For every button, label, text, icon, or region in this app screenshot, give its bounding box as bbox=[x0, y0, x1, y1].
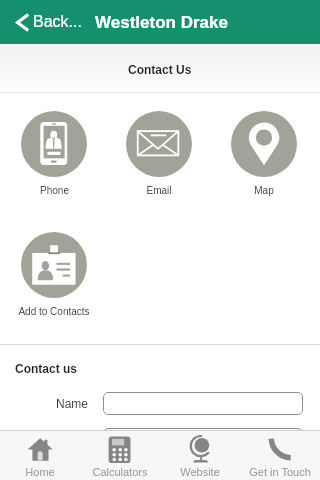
staticText: Contact us bbox=[15, 362, 78, 375]
button[interactable] bbox=[103, 392, 303, 415]
staticText: Home bbox=[25, 466, 55, 478]
button[interactable]: Home bbox=[0, 431, 80, 480]
staticText: Contact Us bbox=[128, 63, 192, 76]
staticText: Map bbox=[254, 185, 274, 196]
staticText: Back... bbox=[33, 13, 82, 31]
button[interactable]: Add to Contacts bbox=[2, 232, 106, 317]
staticText: Get in Touch bbox=[249, 466, 311, 478]
button[interactable]: Phone bbox=[2, 111, 106, 196]
button[interactable]: Email bbox=[106, 111, 211, 196]
button[interactable]: Back... bbox=[0, 0, 92, 44]
button[interactable]: Map bbox=[211, 111, 316, 196]
button[interactable]: Get in Touch bbox=[240, 431, 320, 480]
staticText: Name bbox=[56, 397, 89, 410]
button[interactable]: Calculators bbox=[80, 431, 160, 480]
staticText: Email bbox=[146, 185, 172, 196]
button[interactable]: Website bbox=[160, 431, 240, 480]
staticText: Add to Contacts bbox=[18, 306, 90, 317]
staticText: Phone bbox=[40, 185, 69, 196]
staticText: Calculators bbox=[92, 466, 148, 478]
button[interactable] bbox=[103, 428, 303, 451]
staticText: Westleton Drake bbox=[95, 13, 228, 32]
staticText: Website bbox=[180, 466, 220, 478]
